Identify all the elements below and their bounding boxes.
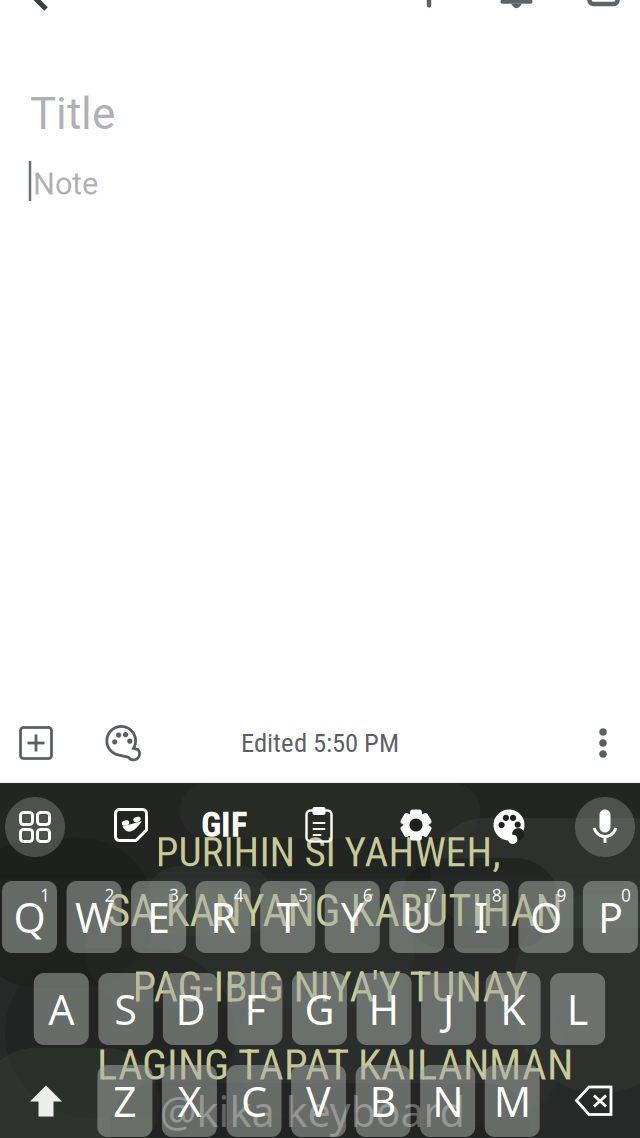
button[interactable]: T	[260, 881, 315, 953]
button[interactable]: GIF	[194, 803, 254, 847]
staticText: Z	[113, 1074, 137, 1128]
staticText: Edited 5:50 PM	[241, 727, 399, 759]
button[interactable]: Z	[97, 1065, 152, 1137]
staticText: E	[147, 890, 170, 944]
staticText: L	[567, 982, 589, 1036]
staticText: F	[244, 982, 265, 1036]
button[interactable]: C	[226, 1065, 281, 1137]
button[interactable]: H	[357, 973, 412, 1045]
button[interactable]: Archive	[587, 1, 620, 7]
button[interactable]: J	[421, 973, 476, 1045]
staticText: Title	[30, 88, 115, 140]
button[interactable]: Reminder	[500, 0, 532, 10]
staticText: 2	[104, 883, 114, 906]
button[interactable]: F	[227, 973, 282, 1045]
staticText: T	[276, 890, 299, 944]
button[interactable]: D	[163, 973, 218, 1045]
button[interactable]: Backspace	[566, 1065, 621, 1137]
staticText: J	[443, 982, 454, 1036]
button[interactable]: Change colour	[96, 716, 150, 770]
staticText: LAGING TAPAT KAILANMAN	[97, 1040, 573, 1090]
staticText: P	[598, 890, 623, 944]
staticText: PURIHIN SI YAHWEH,	[155, 828, 500, 876]
button[interactable]: R	[196, 881, 251, 953]
button[interactable]: Add	[9, 716, 63, 770]
button[interactable]: Clipboard	[296, 802, 342, 848]
button[interactable]: P	[583, 881, 638, 953]
staticText: B	[370, 1074, 397, 1128]
staticText: M	[494, 1074, 531, 1128]
staticText: Q	[13, 890, 45, 944]
button[interactable]: L	[550, 973, 605, 1045]
staticText: 7	[427, 883, 437, 906]
button[interactable]: V	[291, 1065, 346, 1137]
button[interactable]: W	[66, 881, 121, 953]
button[interactable]: S	[98, 973, 153, 1045]
staticText: GIF	[201, 805, 247, 845]
staticText: 3	[169, 883, 179, 906]
staticText: 4	[234, 883, 244, 906]
button[interactable]: G	[292, 973, 347, 1045]
staticText: G	[304, 982, 334, 1036]
staticText: Y	[341, 890, 364, 944]
button[interactable]: Pin note	[426, 0, 431, 8]
staticText: 0	[621, 883, 631, 906]
button[interactable]: Theme	[486, 802, 532, 848]
button[interactable]: O	[518, 881, 573, 953]
button[interactable]: Keyboard menu	[5, 797, 65, 857]
staticText: SA KANYANG KABUTIHAN	[107, 885, 562, 937]
button[interactable]: E	[131, 881, 186, 953]
staticText: 6	[363, 883, 373, 906]
staticText: 5	[298, 883, 308, 906]
button[interactable]: N	[420, 1065, 475, 1137]
button[interactable]: K	[486, 973, 541, 1045]
staticText: R	[210, 890, 236, 944]
staticText: W	[75, 890, 113, 944]
staticText: PAG-IBIG NIYA'Y TUNAY	[132, 962, 527, 1012]
staticText: H	[369, 982, 400, 1036]
button[interactable]: Back	[28, 0, 48, 7]
button[interactable]: U	[389, 881, 444, 953]
staticText: 8	[492, 883, 502, 906]
staticText: C	[241, 1074, 267, 1128]
button[interactable]: Shift	[18, 1065, 73, 1137]
button[interactable]: Voice input	[575, 797, 635, 857]
button[interactable]: Y	[325, 881, 380, 953]
staticText: Note	[33, 166, 98, 202]
staticText: I	[474, 890, 488, 944]
staticText: U	[402, 890, 432, 944]
button[interactable]: M	[485, 1065, 540, 1137]
button[interactable]: More options	[577, 717, 629, 769]
button[interactable]: B	[356, 1065, 411, 1137]
staticText: K	[500, 982, 526, 1036]
staticText: @kika keyboard	[159, 1084, 464, 1138]
button[interactable]: Stickers	[106, 800, 156, 850]
staticText: S	[114, 982, 137, 1036]
staticText: X	[177, 1074, 201, 1128]
button[interactable]: A	[34, 973, 89, 1045]
button[interactable]: Settings	[393, 802, 439, 848]
staticText: 1	[40, 883, 50, 906]
staticText: O	[530, 890, 562, 944]
staticText: A	[48, 982, 74, 1036]
button[interactable]: Q	[2, 881, 57, 953]
staticText: D	[175, 982, 205, 1036]
staticText: V	[306, 1074, 331, 1128]
button[interactable]: I	[454, 881, 509, 953]
button[interactable]: X	[162, 1065, 217, 1137]
staticText: N	[432, 1074, 463, 1128]
staticText: 9	[556, 883, 566, 906]
